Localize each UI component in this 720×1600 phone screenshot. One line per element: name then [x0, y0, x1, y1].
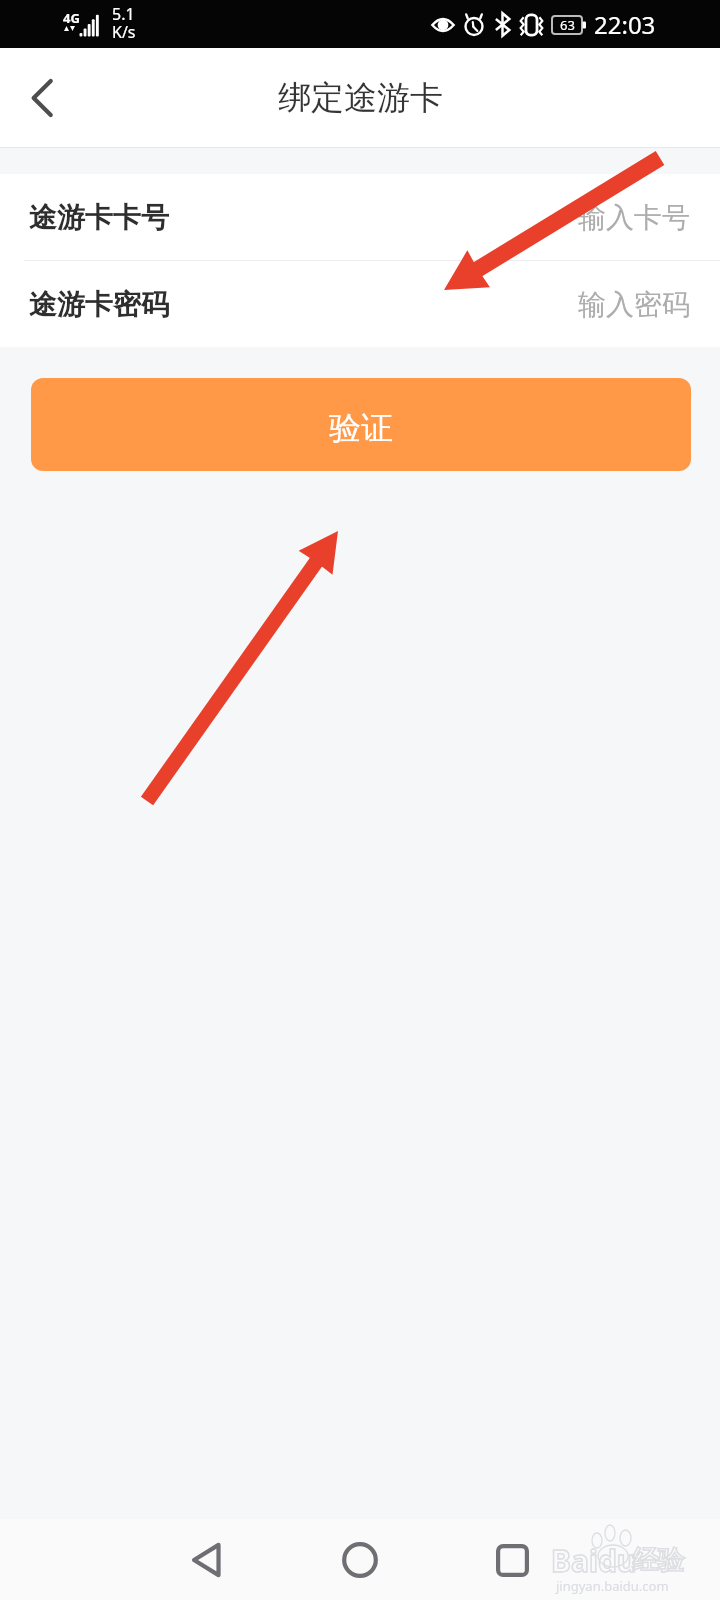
button[interactable]: Back	[12, 68, 72, 128]
button[interactable]: Recents	[480, 1528, 544, 1592]
staticText: 22:03	[594, 8, 656, 41]
staticText: 途游卡卡号	[29, 200, 169, 235]
staticText: 5.1 K/s	[112, 3, 136, 43]
staticText: 经验	[632, 1544, 684, 1577]
button[interactable]: 途游卡卡号	[0, 174, 720, 260]
button[interactable]: 验证	[31, 378, 691, 471]
staticText: 4G	[63, 9, 80, 27]
staticText: 63	[560, 16, 575, 34]
staticText: 输入卡号	[578, 200, 690, 235]
button[interactable]: 途游卡密码	[0, 261, 720, 347]
staticText: Baidu	[551, 1540, 637, 1581]
button[interactable]: Back	[175, 1528, 239, 1592]
staticText: 验证	[329, 408, 393, 448]
staticText: jingyan.baidu.com	[556, 1577, 669, 1595]
staticText: 输入密码	[578, 287, 690, 322]
button[interactable]: Home	[328, 1528, 392, 1592]
staticText: 绑定途游卡	[278, 77, 443, 119]
staticText: 途游卡密码	[29, 287, 169, 322]
